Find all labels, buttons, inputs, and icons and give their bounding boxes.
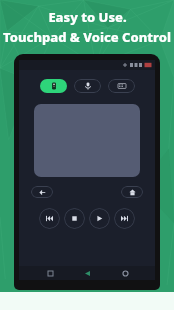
staticText: Touchpad & Voice Control bbox=[3, 28, 171, 46]
button[interactable]: Touchpad mode bbox=[40, 79, 67, 93]
button[interactable]: Keyboard bbox=[108, 79, 135, 93]
button[interactable]: Voice control bbox=[74, 79, 101, 93]
button[interactable]: Touchpad bbox=[34, 104, 140, 177]
button[interactable]: Play bbox=[89, 208, 110, 229]
staticText: Easy to Use. bbox=[48, 8, 127, 26]
button[interactable]: Forward bbox=[114, 208, 135, 229]
button[interactable]: Recents bbox=[43, 266, 57, 280]
button[interactable]: Home bbox=[121, 186, 143, 198]
button[interactable]: Back bbox=[80, 266, 94, 280]
button[interactable]: Home bbox=[118, 266, 132, 280]
button[interactable]: Rewind bbox=[39, 208, 60, 229]
button[interactable]: Back bbox=[31, 186, 53, 198]
button[interactable]: Stop bbox=[64, 208, 85, 229]
